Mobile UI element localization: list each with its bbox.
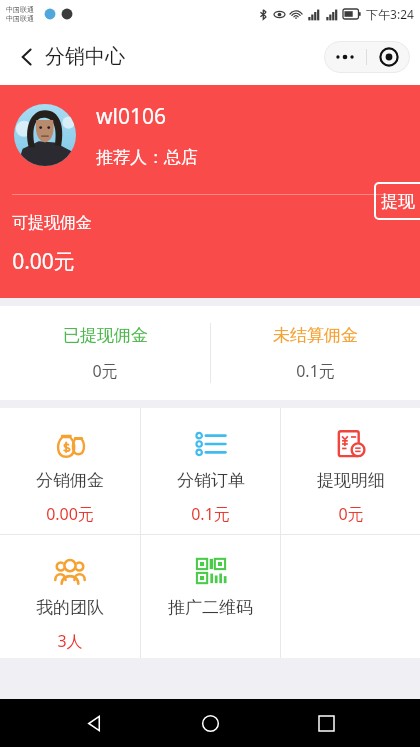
- staticText: 0元: [338, 503, 364, 525]
- staticText: 3人: [57, 630, 83, 652]
- staticText: 推广二维码: [168, 597, 253, 618]
- button[interactable]: 提现明细: [281, 408, 420, 534]
- staticText: 0.00元: [46, 503, 94, 525]
- staticText: 可提现佣金: [12, 213, 92, 233]
- staticText: 提现明细: [317, 470, 385, 491]
- button[interactable]: Recents: [304, 701, 348, 745]
- staticText: 提现: [381, 191, 415, 212]
- button[interactable]: Close: [367, 41, 410, 73]
- staticText: 推荐人：总店: [96, 147, 198, 168]
- button[interactable]: 分销佣金: [0, 408, 140, 534]
- staticText: 中国联通: [6, 5, 34, 14]
- button[interactable]: 已提现佣金: [0, 306, 210, 400]
- button[interactable]: 未结算佣金: [210, 306, 420, 400]
- staticText: 下午3:24: [366, 6, 414, 22]
- staticText: 我的团队: [36, 597, 104, 618]
- button[interactable]: Home: [188, 701, 232, 745]
- staticText: 0.00元: [12, 247, 75, 276]
- button[interactable]: 推广二维码: [141, 535, 280, 658]
- staticText: 分销佣金: [36, 470, 104, 491]
- staticText: 分销中心: [45, 44, 125, 69]
- staticText: 分销订单: [177, 470, 245, 491]
- staticText: 0.1元: [191, 503, 230, 525]
- staticText: 0元: [92, 360, 118, 382]
- staticText: 中国联通: [6, 14, 34, 23]
- button[interactable]: 提现: [374, 182, 420, 220]
- button[interactable]: More: [324, 41, 366, 73]
- button[interactable]: Back: [72, 701, 116, 745]
- staticText: wl0106: [96, 102, 166, 131]
- staticText: 已提现佣金: [63, 325, 148, 346]
- button[interactable]: Back: [10, 40, 44, 74]
- button[interactable]: 分销订单: [141, 408, 280, 534]
- button[interactable]: 我的团队: [0, 535, 140, 658]
- staticText: 0.1元: [296, 360, 335, 382]
- staticText: 未结算佣金: [273, 325, 358, 346]
